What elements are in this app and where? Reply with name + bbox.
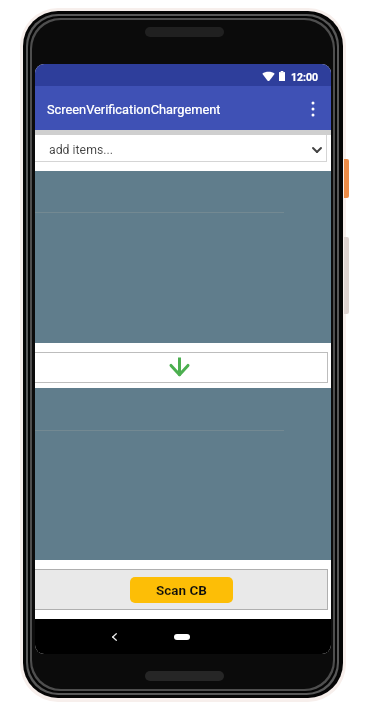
- button[interactable]: Scan CB: [130, 577, 233, 603]
- button[interactable]: Back: [105, 627, 123, 647]
- staticText: add items...: [49, 143, 114, 157]
- button[interactable]: More options: [294, 86, 331, 130]
- button[interactable]: Download: [35, 352, 328, 383]
- button[interactable]: Home: [174, 634, 190, 640]
- button[interactable]: add items...: [35, 135, 331, 162]
- staticText: Scan CB: [156, 582, 207, 598]
- staticText: ScreenVerificationChargement: [47, 102, 221, 117]
- staticText: 12:00: [291, 71, 319, 83]
